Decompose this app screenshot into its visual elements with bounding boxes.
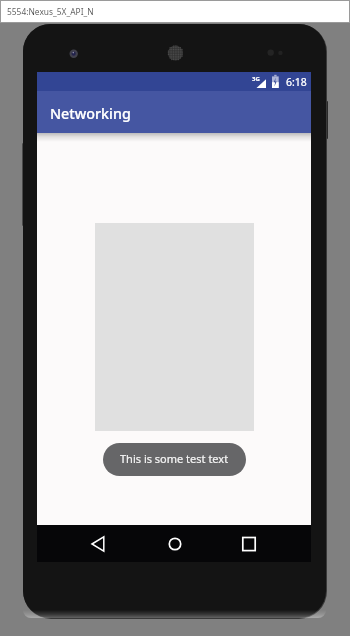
staticText: This is some test text <box>120 451 229 466</box>
button[interactable]: Recent apps <box>231 525 267 562</box>
staticText: 5554:Nexus_5X_API_N <box>7 6 94 17</box>
staticText: 3G <box>252 75 260 83</box>
staticText: 6:18 <box>286 75 307 89</box>
staticText: Networking <box>50 104 131 123</box>
button[interactable]: This is some test text <box>103 443 246 476</box>
button[interactable]: Back <box>80 525 116 562</box>
button[interactable]: Home <box>157 525 193 562</box>
